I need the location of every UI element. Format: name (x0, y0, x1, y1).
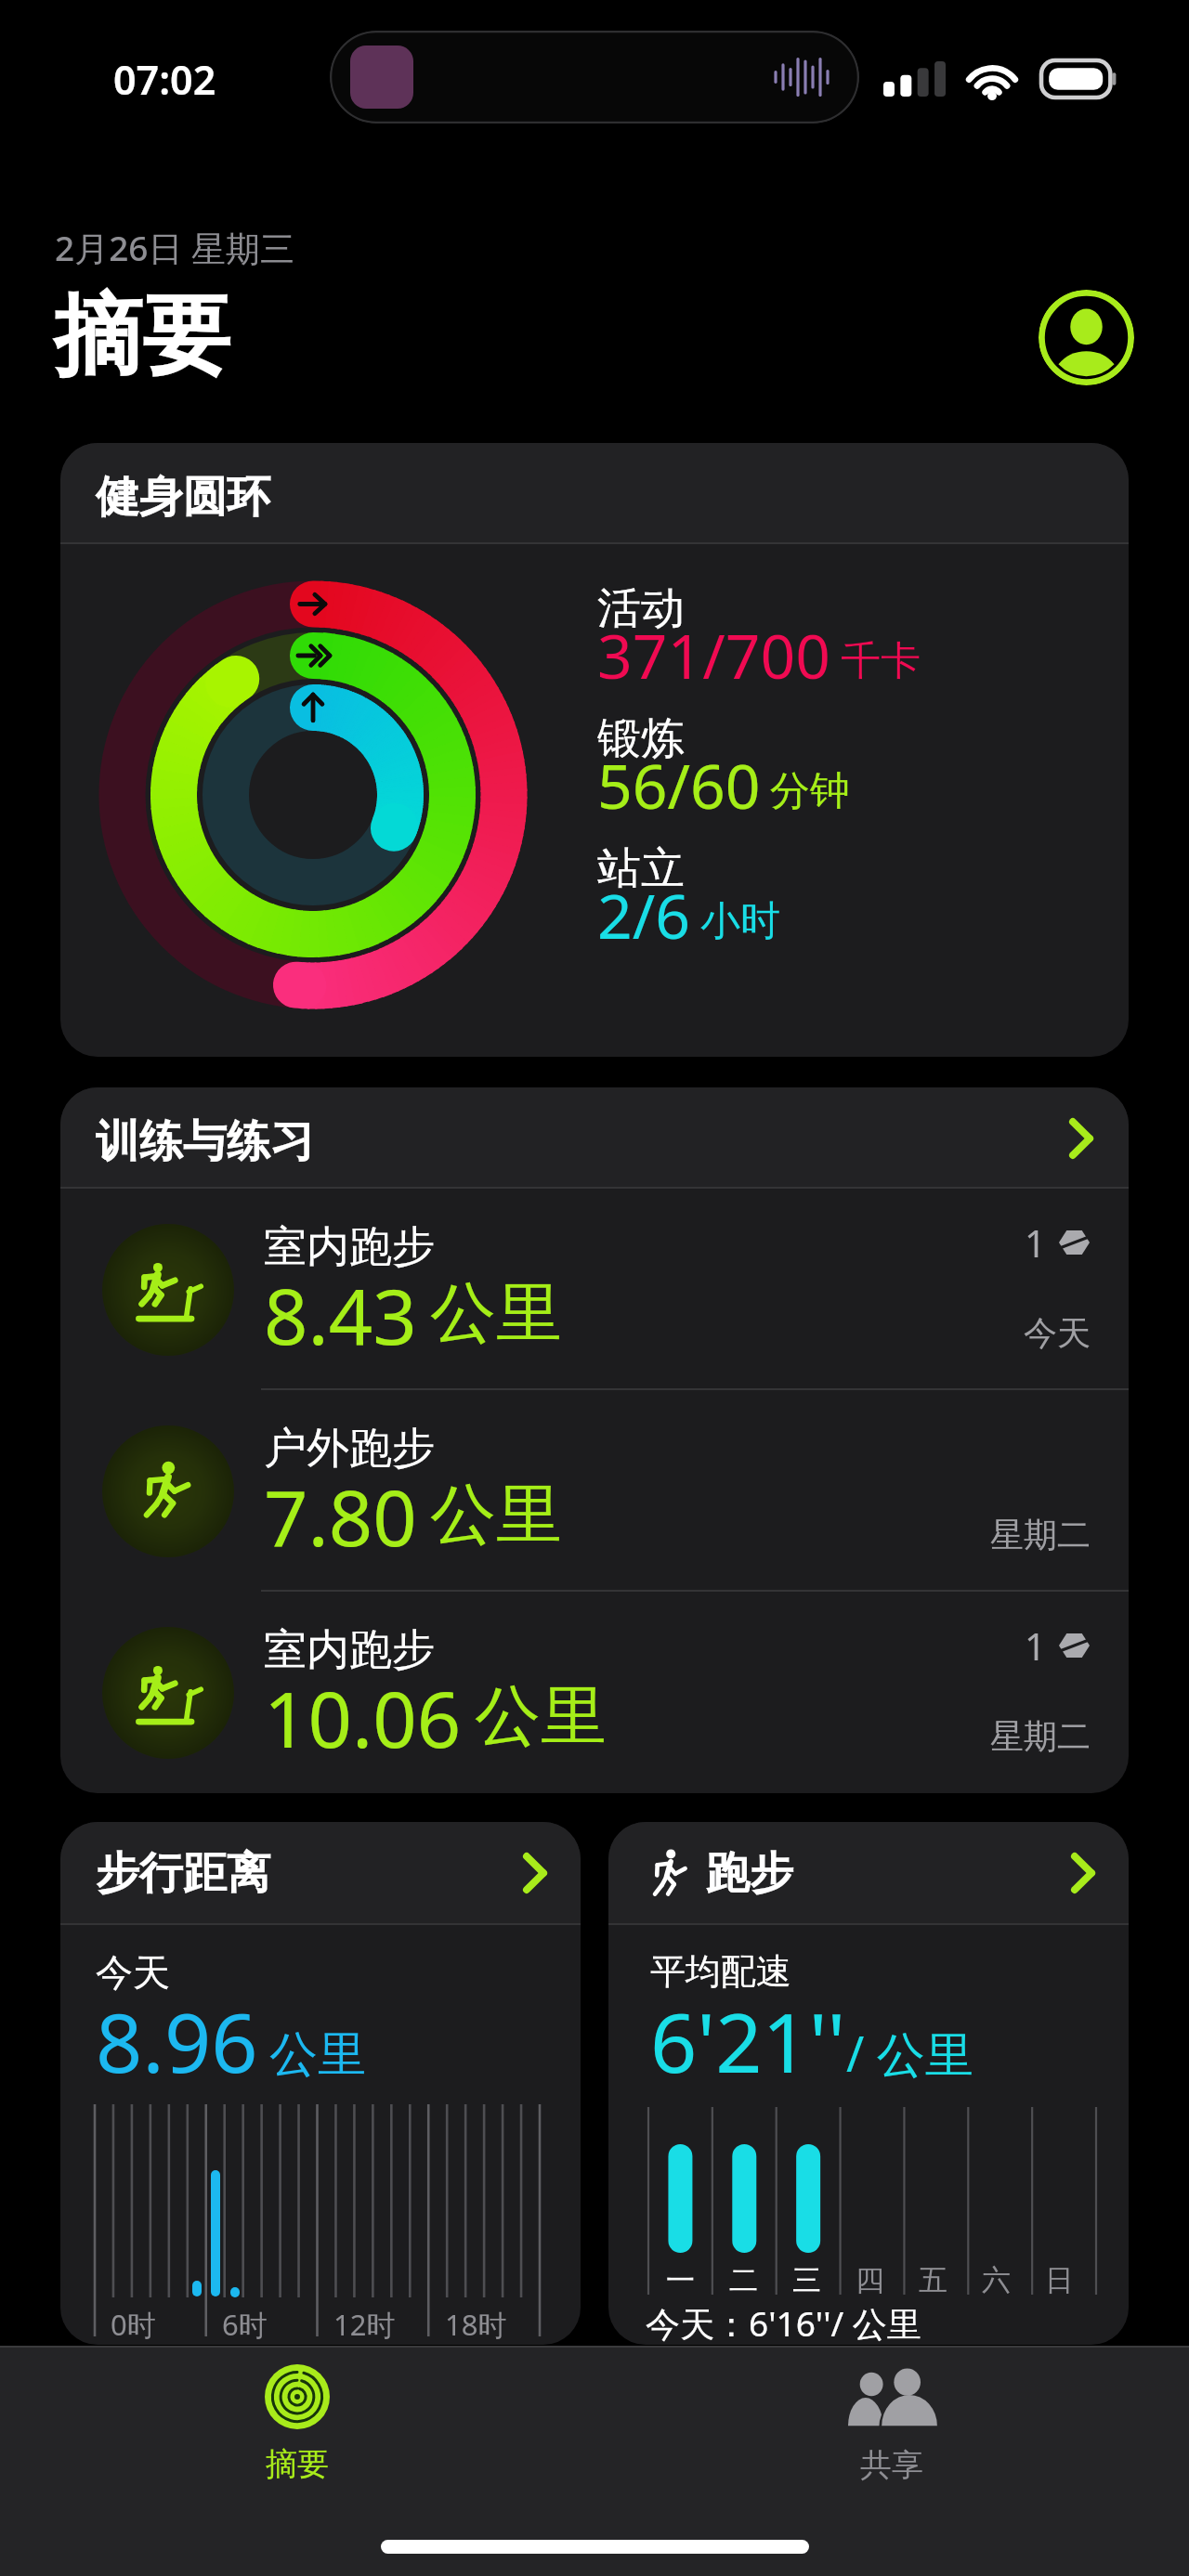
staticText: 2/6 (597, 873, 691, 956)
staticText: 今天 (96, 1949, 170, 1996)
staticText: 0时 (111, 2305, 156, 2344)
button[interactable]: 个人资料 (1039, 290, 1134, 385)
staticText: 二 (729, 2262, 758, 2298)
staticText: 日 (1045, 2262, 1074, 2298)
staticText: 活动 (597, 581, 685, 636)
staticText: 8.43 (264, 1262, 417, 1367)
staticText: 公里 (430, 1272, 562, 1355)
button[interactable]: 训练与练习 (60, 1087, 1129, 1189)
button[interactable]: 跑步 (608, 1822, 1129, 1925)
staticText: 07:02 (113, 52, 216, 107)
staticText: 四 (856, 2262, 884, 2298)
staticText: 6'21'' (650, 1985, 846, 2097)
staticText: 2月26日 星期三 (55, 224, 295, 271)
staticText: 平均配速 (650, 1949, 791, 1994)
staticText: 6时 (222, 2305, 268, 2344)
other: 查看跑步 (1071, 1853, 1095, 1893)
staticText: 健身圆环 (96, 470, 270, 525)
staticText: 锻炼 (597, 711, 685, 766)
staticText: 摘要 (266, 2444, 329, 2484)
button[interactable]: 健身圆环 (60, 443, 1129, 1057)
staticText: 1 (1025, 1217, 1046, 1268)
button[interactable]: 摘要 (149, 2346, 446, 2576)
staticText: 10.06 (264, 1665, 462, 1770)
staticText: 18时 (445, 2305, 507, 2344)
staticText: 共享 (860, 2445, 923, 2485)
staticText: 8.96 (96, 1985, 258, 2097)
staticText: 星期二 (990, 1715, 1091, 1757)
button[interactable]: 室内跑步 (60, 1592, 1129, 1793)
staticText: 千卡 (841, 636, 921, 686)
staticText: 站立 (597, 841, 685, 896)
staticText: 公里 (430, 1474, 562, 1556)
button[interactable]: 室内跑步 (60, 1189, 1129, 1390)
staticText: 今天：6'16''/ 公里 (646, 2299, 921, 2345)
button[interactable]: 共享 (743, 2346, 1040, 2576)
staticText: 训练与练习 (96, 1114, 314, 1169)
staticText: 六 (982, 2262, 1011, 2298)
staticText: 公里 (269, 2024, 366, 2086)
staticText: 五 (919, 2262, 947, 2298)
staticText: 56/60 (597, 743, 761, 826)
button[interactable]: 步行距离 (60, 1822, 581, 1925)
staticText: 步行距离 (96, 1846, 270, 1901)
staticText: 371/700 (597, 613, 831, 696)
staticText: 室内跑步 (264, 1220, 435, 1274)
staticText: 小时 (700, 896, 780, 946)
button[interactable]: 户外跑步 (60, 1390, 1129, 1592)
staticText: 跑步 (706, 1846, 793, 1901)
staticText: 室内跑步 (264, 1623, 435, 1677)
other: 查看步行距离 (523, 1853, 547, 1893)
staticText: 户外跑步 (264, 1422, 435, 1476)
staticText: / 公里 (846, 2020, 973, 2086)
staticText: 摘要 (54, 281, 230, 393)
staticText: 7.80 (264, 1464, 417, 1568)
staticText: 一 (666, 2262, 695, 2298)
staticText: 今天 (1024, 1312, 1091, 1354)
staticText: 公里 (475, 1675, 607, 1758)
staticText: 12时 (333, 2305, 396, 2344)
staticText: 1 (1025, 1620, 1046, 1671)
other: 查看训练与练习 (1069, 1118, 1093, 1159)
staticText: 三 (792, 2262, 821, 2298)
staticText: 分钟 (770, 766, 850, 816)
staticText: 星期二 (990, 1514, 1091, 1555)
